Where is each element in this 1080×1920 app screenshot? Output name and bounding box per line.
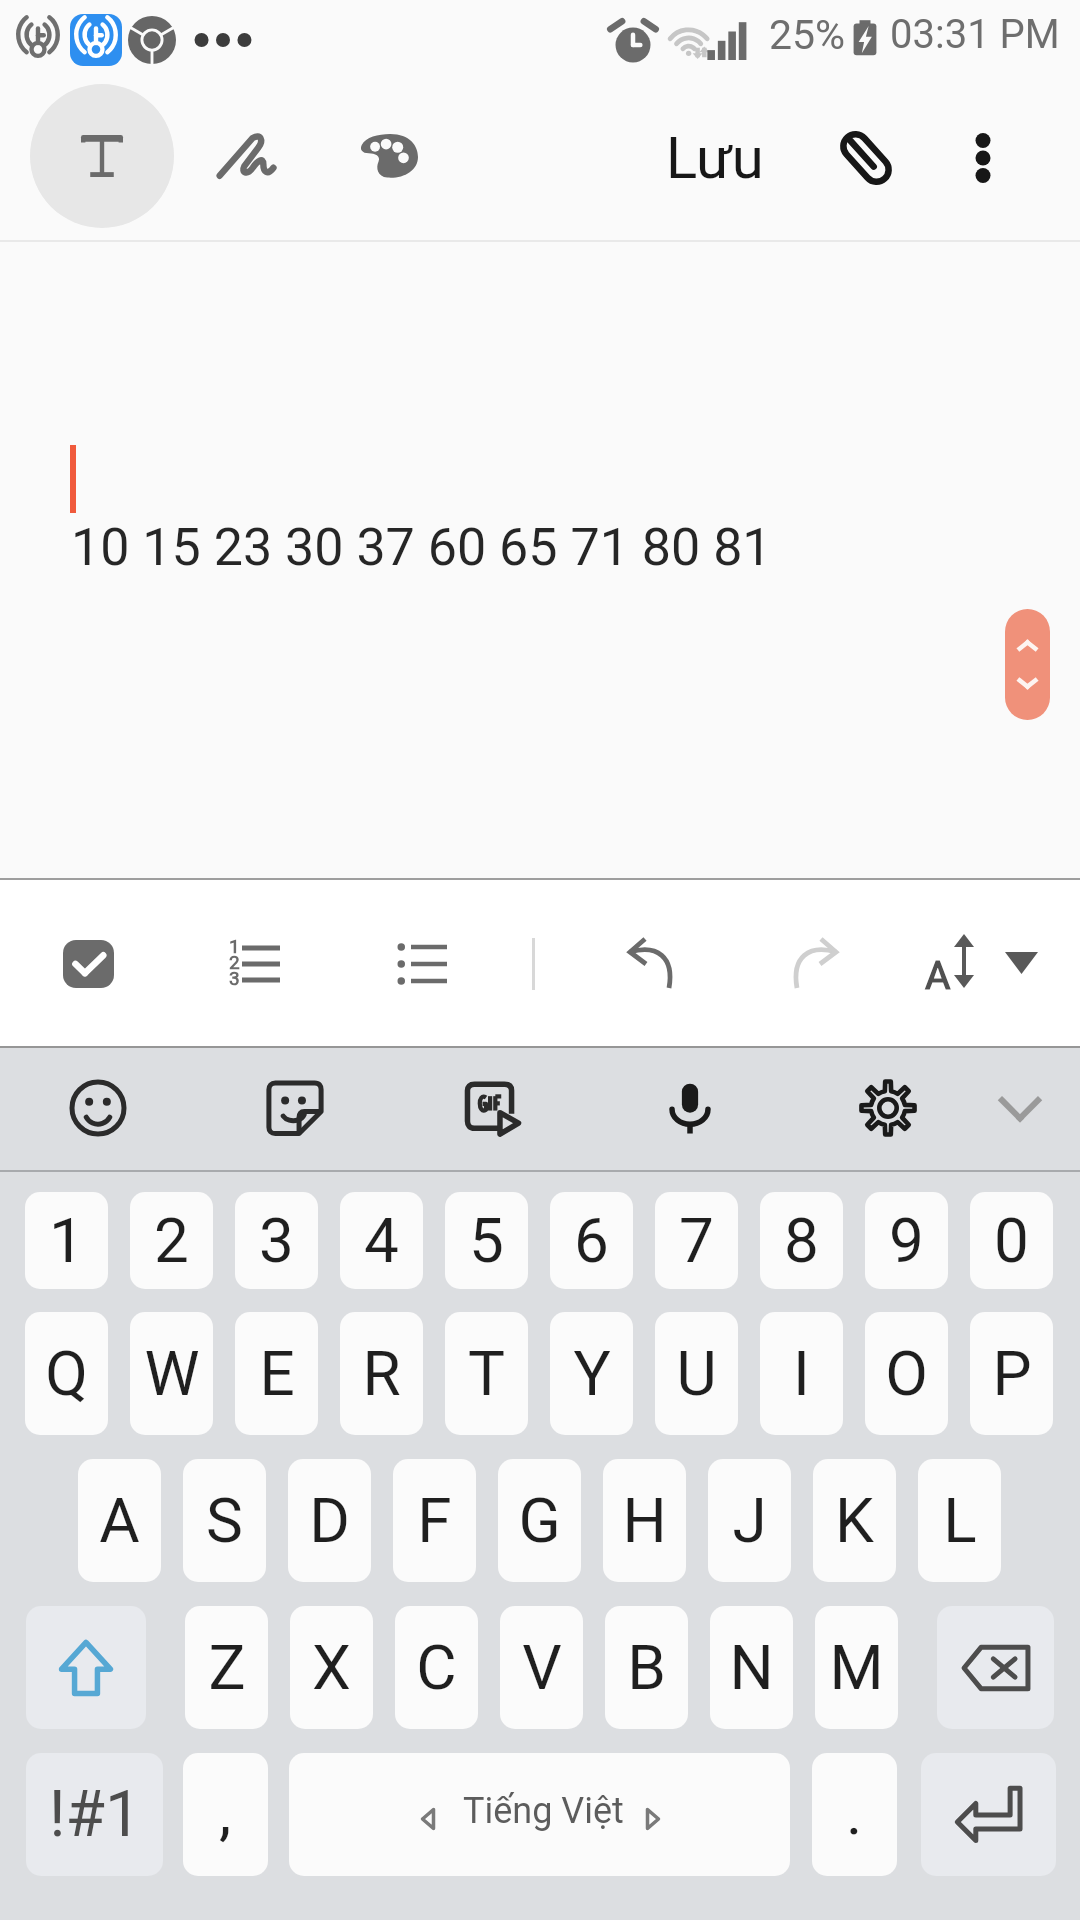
staticText: 9	[889, 1204, 924, 1277]
staticText: 7	[679, 1204, 714, 1277]
staticText: F	[417, 1484, 452, 1557]
staticText: I	[793, 1337, 810, 1410]
button[interactable]: Undo	[600, 914, 700, 1014]
button[interactable]: Y	[550, 1312, 633, 1435]
button[interactable]: Checklist	[38, 914, 138, 1014]
staticText: R	[362, 1337, 401, 1410]
button[interactable]: Redo	[766, 914, 866, 1014]
button[interactable]: Drawing mode	[329, 84, 449, 228]
staticText: 1	[49, 1204, 84, 1277]
button[interactable]: U	[655, 1312, 738, 1435]
staticText: !#1	[49, 1777, 141, 1852]
button[interactable]: H	[603, 1459, 686, 1582]
staticText: Lưu	[666, 124, 764, 192]
staticText: M	[829, 1631, 884, 1704]
staticText: N	[729, 1631, 774, 1704]
button[interactable]: J	[708, 1459, 791, 1582]
staticText: 1	[229, 935, 240, 957]
button[interactable]: .	[812, 1753, 897, 1876]
button[interactable]: 9	[865, 1192, 948, 1289]
staticText: P	[992, 1337, 1032, 1410]
button[interactable]: Scroll up or down	[1005, 609, 1050, 720]
button[interactable]: GIF	[448, 1063, 538, 1153]
staticText: Z	[208, 1631, 246, 1704]
staticText: L	[943, 1484, 977, 1557]
button[interactable]: N	[710, 1606, 793, 1729]
staticText: Tiếng Việt	[463, 1790, 624, 1832]
staticText: 6	[574, 1204, 609, 1277]
button[interactable]: Voice input	[645, 1063, 735, 1153]
button[interactable]: V	[500, 1606, 583, 1729]
staticText: 8	[784, 1204, 819, 1277]
button[interactable]: X	[290, 1606, 373, 1729]
staticText: E	[259, 1337, 295, 1410]
staticText: 5	[469, 1204, 504, 1277]
staticText: T	[468, 1337, 505, 1410]
staticText: A	[925, 953, 951, 999]
staticText: 10 15 23 30 37 60 65 71 80 81	[71, 517, 772, 578]
staticText: S	[206, 1484, 243, 1557]
staticText: 2	[154, 1204, 189, 1277]
staticText: 3	[229, 967, 240, 989]
button[interactable]: O	[865, 1312, 948, 1435]
button[interactable]: ,	[183, 1753, 268, 1876]
button[interactable]: C	[395, 1606, 478, 1729]
button[interactable]: Hide keyboard	[978, 1074, 1062, 1144]
staticText: H	[622, 1484, 667, 1557]
button[interactable]: Shift	[26, 1606, 146, 1729]
button[interactable]: P	[970, 1312, 1053, 1435]
staticText: 4	[364, 1204, 399, 1277]
button[interactable]: L	[918, 1459, 1001, 1582]
button[interactable]: Q	[25, 1312, 108, 1435]
button[interactable]: 7	[655, 1192, 738, 1289]
button[interactable]: Handwriting mode	[186, 84, 306, 228]
button[interactable]: B	[605, 1606, 688, 1729]
button[interactable]: 2	[130, 1192, 213, 1289]
button[interactable]: Text mode	[30, 84, 174, 228]
button[interactable]: Backspace	[937, 1606, 1054, 1729]
staticText: W	[144, 1337, 200, 1410]
button[interactable]: Numbered list	[205, 914, 305, 1014]
button[interactable]: 4	[340, 1192, 423, 1289]
staticText: .	[846, 1776, 863, 1849]
button[interactable]: 3	[235, 1192, 318, 1289]
staticText: G	[518, 1484, 561, 1557]
staticText: J	[732, 1484, 767, 1557]
staticText: Q	[45, 1337, 88, 1410]
button[interactable]: I	[760, 1312, 843, 1435]
button[interactable]: W	[130, 1312, 213, 1435]
button[interactable]: Emoji	[53, 1063, 143, 1153]
button[interactable]: F	[393, 1459, 476, 1582]
button[interactable]: Stickers	[250, 1063, 340, 1153]
staticText: C	[416, 1631, 457, 1704]
staticText: O	[885, 1337, 928, 1410]
button[interactable]: D	[288, 1459, 371, 1582]
staticText: Y	[573, 1337, 611, 1410]
button[interactable]: Enter	[921, 1753, 1056, 1876]
button[interactable]: 6	[550, 1192, 633, 1289]
button[interactable]: S	[183, 1459, 266, 1582]
button[interactable]: Bullet list	[372, 914, 472, 1014]
button[interactable]: K	[813, 1459, 896, 1582]
button[interactable]: Keyboard settings	[843, 1063, 933, 1153]
button[interactable]: M	[815, 1606, 898, 1729]
staticText: 0	[994, 1204, 1029, 1277]
button[interactable]: Space, Tiếng Việt	[289, 1753, 790, 1876]
button[interactable]: G	[498, 1459, 581, 1582]
staticText: D	[309, 1484, 350, 1557]
button[interactable]: 0	[970, 1192, 1053, 1289]
button[interactable]: Text size	[900, 908, 1058, 1020]
button[interactable]: 5	[445, 1192, 528, 1289]
button[interactable]: 8	[760, 1192, 843, 1289]
button[interactable]: T	[445, 1312, 528, 1435]
button[interactable]: Z	[185, 1606, 268, 1729]
button[interactable]: Symbols	[26, 1753, 163, 1876]
staticText: 3	[259, 1204, 294, 1277]
button[interactable]: More options	[928, 96, 1038, 220]
button[interactable]: Attach file	[806, 96, 926, 220]
button[interactable]: R	[340, 1312, 423, 1435]
button[interactable]: E	[235, 1312, 318, 1435]
button[interactable]: Lưu	[648, 96, 782, 220]
button[interactable]: A	[78, 1459, 161, 1582]
button[interactable]: 1	[25, 1192, 108, 1289]
